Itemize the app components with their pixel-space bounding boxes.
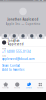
staticText: info: [40, 37, 42, 39]
button[interactable]: info: [37, 34, 44, 40]
staticText: Jonathan Appleseed: [8, 39, 24, 46]
staticText: Add to Favorites: [2, 68, 24, 71]
button[interactable]: video: [19, 34, 27, 40]
button[interactable]: phone: [10, 34, 18, 40]
staticText: phone: [12, 37, 17, 39]
staticText: Contacts: [26, 87, 32, 88]
button[interactable]: Share Contact: [2, 64, 44, 68]
staticText: message: [2, 37, 9, 39]
staticText: mobile: [2, 48, 6, 50]
button[interactable]: message: [1, 34, 9, 40]
staticText: 9:41: [3, 0, 10, 1]
staticText: aıl ᯾ ▮: [33, 0, 43, 1]
staticText: Share Contact: [2, 64, 20, 67]
button[interactable]: Keypad: [34, 79, 46, 92]
staticText: Apple Inc. — Cupertino: [5, 22, 40, 26]
button[interactable]: Recents: [11, 79, 23, 92]
staticText: Favorites: [2, 87, 9, 88]
button[interactable]: Jonathan Appleseed: [0, 39, 46, 46]
staticText: home: [2, 55, 6, 57]
button[interactable]: Favorites: [0, 79, 11, 92]
staticText: Jonathan Appleseed: [7, 18, 38, 21]
staticText: appleseed@icloud.com: [2, 57, 34, 61]
button[interactable]: Contacts: [23, 79, 34, 92]
button[interactable]: Add to Favorites: [2, 68, 44, 72]
staticText: Recents: [14, 87, 20, 88]
staticText: video: [21, 37, 25, 39]
button[interactable]: mail: [28, 34, 36, 40]
staticText: +1 (408) 555-0134: [2, 50, 31, 53]
staticText: mail: [31, 37, 33, 39]
